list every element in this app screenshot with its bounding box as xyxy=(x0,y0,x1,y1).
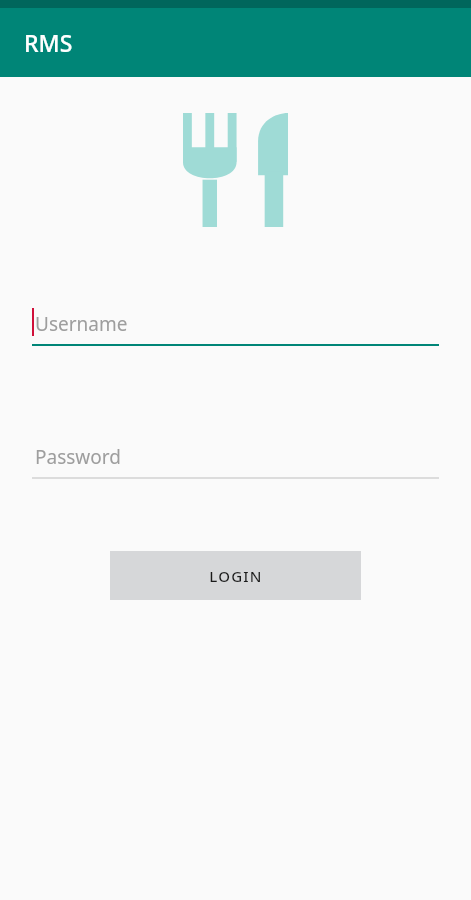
staticText: Username xyxy=(35,311,128,337)
button[interactable]: LOGIN xyxy=(110,551,361,600)
staticText: Password xyxy=(35,444,121,470)
button[interactable]: Username xyxy=(32,304,439,346)
staticText: LOGIN xyxy=(209,566,263,586)
staticText: RMS xyxy=(24,27,73,58)
button[interactable]: Password xyxy=(32,437,439,479)
